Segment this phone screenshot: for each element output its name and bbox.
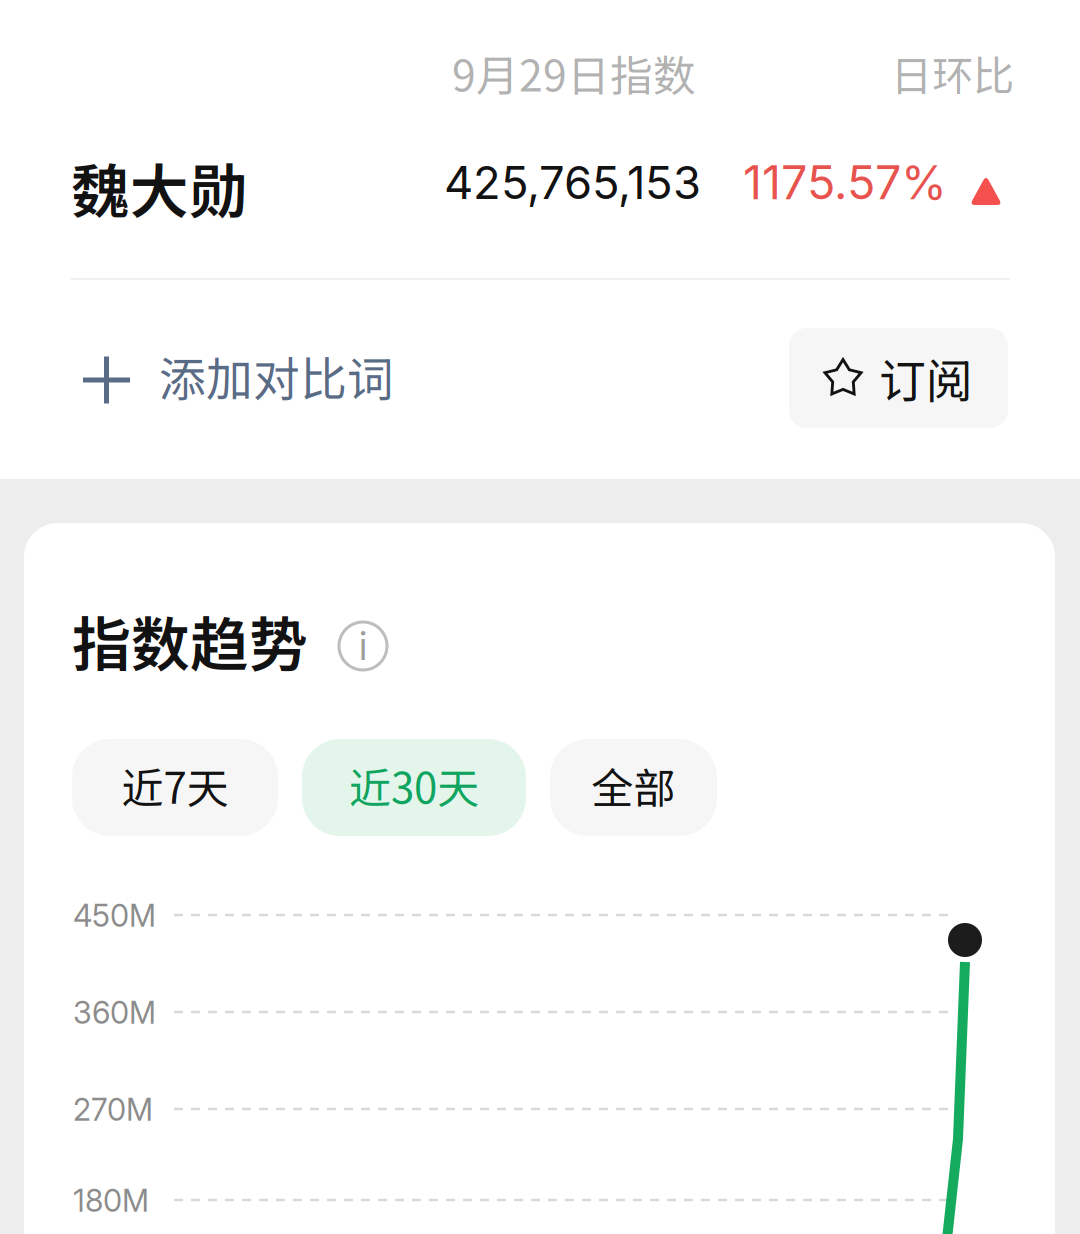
staticText: 180M (73, 1182, 149, 1219)
staticText: 指数趋势 (72, 598, 308, 683)
staticText: 添加对比词 (159, 342, 394, 410)
staticText: i (359, 623, 367, 669)
button[interactable]: 订阅 (789, 328, 1008, 428)
staticText: 360M (73, 994, 156, 1031)
button[interactable]: 近7天 (72, 739, 278, 836)
button[interactable]: 近30天 (302, 739, 526, 836)
button[interactable]: 添加对比词 (71, 333, 406, 427)
staticText: 订阅 (879, 344, 973, 412)
button[interactable]: 关于指数趋势 (339, 622, 387, 670)
staticText: 1175.57% (743, 154, 947, 210)
staticText: 日环比 (891, 43, 1014, 103)
staticText: 近30天 (349, 755, 479, 816)
staticText: 425,765,153 (444, 155, 701, 210)
staticText: 魏大勋 (71, 145, 248, 230)
staticText: 9月29日指数 (452, 42, 696, 104)
staticText: 全部 (591, 755, 675, 816)
staticText: 近7天 (121, 755, 228, 816)
staticText: 450M (73, 897, 156, 934)
staticText: 270M (73, 1091, 153, 1128)
button[interactable]: 全部 (550, 739, 717, 836)
